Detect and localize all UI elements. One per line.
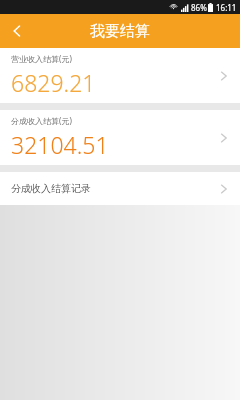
staticText: 32104.51 [11,129,109,160]
staticText: 营业收入结算(元) [11,53,72,64]
button[interactable]: Back [0,14,34,48]
staticText: 6829.21 [11,67,96,98]
button[interactable]: 分成收入结算(元) [0,110,240,165]
staticText: 我要结算 [90,22,150,41]
staticText: 分成收入结算(元) [11,115,72,126]
button[interactable]: 分成收入结算记录 [0,172,240,205]
staticText: 分成收入结算记录 [11,182,219,195]
button[interactable]: 营业收入结算(元) [0,48,240,103]
staticText: 16:11 [216,2,237,13]
staticText: 86% [191,2,207,13]
